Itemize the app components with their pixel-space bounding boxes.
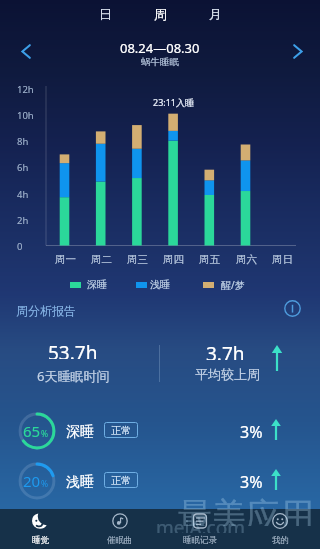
staticText: 周 [154, 6, 167, 22]
staticText: 3% [240, 471, 263, 489]
staticText: 53.7h [48, 340, 98, 359]
staticText: 6h [17, 161, 29, 174]
button[interactable]: 睡觉 [0, 509, 80, 549]
button[interactable]: 日 [78, 0, 133, 28]
button[interactable]: 催眠曲 [80, 509, 160, 549]
button[interactable]: Info [278, 294, 306, 322]
staticText: 正常 [111, 424, 131, 437]
staticText: 睡觉 [32, 535, 49, 546]
staticText: 深睡 [66, 423, 94, 439]
staticText: 周六 [236, 253, 257, 266]
staticText: 日 [99, 6, 112, 22]
staticText: 平均较上周 [195, 366, 260, 382]
staticText: 4h [17, 188, 29, 201]
staticText: 2h [17, 214, 29, 227]
staticText: 睡眠记录 [183, 535, 217, 546]
staticText: 3.7h [206, 341, 245, 360]
staticText: 催眠曲 [107, 535, 133, 546]
staticText: 3% [240, 421, 263, 439]
button[interactable]: 我的 [240, 509, 320, 549]
button[interactable]: 睡眠记录 [160, 509, 240, 549]
staticText: 8h [17, 135, 29, 148]
staticText: 周分析报告 [16, 303, 76, 318]
staticText: 6天睡眠时间 [37, 367, 110, 383]
staticText: 我的 [272, 535, 289, 546]
staticText: 醒/梦 [221, 278, 245, 292]
staticText: 浅睡 [150, 278, 170, 291]
staticText: 周日 [272, 253, 293, 266]
button[interactable]: Previous week [8, 33, 44, 69]
staticText: 20 [23, 471, 41, 491]
staticText: 23:11入睡 [153, 96, 195, 108]
staticText: 深睡 [87, 278, 107, 291]
staticText: 0 [17, 240, 23, 253]
staticText: 65 [23, 421, 41, 441]
button[interactable]: 65 [0, 407, 320, 455]
staticText: 浅睡 [66, 473, 94, 489]
staticText: 周四 [163, 253, 184, 266]
staticText: 月 [209, 6, 222, 22]
staticText: 10h [17, 109, 34, 122]
staticText: 正常 [111, 474, 131, 487]
staticText: 周三 [127, 253, 148, 266]
staticText: % [41, 478, 49, 490]
staticText: 08.24—08.30 [120, 39, 200, 53]
button[interactable]: 月 [188, 0, 243, 28]
staticText: 蜗牛睡眠 [141, 56, 179, 68]
staticText: % [41, 428, 49, 440]
staticText: 12h [17, 83, 34, 96]
button[interactable]: 周 [133, 0, 188, 28]
staticText: meiA.com [156, 515, 245, 533]
button[interactable]: 20 [0, 457, 320, 505]
button[interactable]: Next week [280, 33, 316, 69]
staticText: 周二 [91, 253, 112, 266]
staticText: 周五 [199, 253, 220, 266]
staticText: 周一 [55, 253, 76, 266]
staticText: 最美应用 [178, 494, 314, 526]
